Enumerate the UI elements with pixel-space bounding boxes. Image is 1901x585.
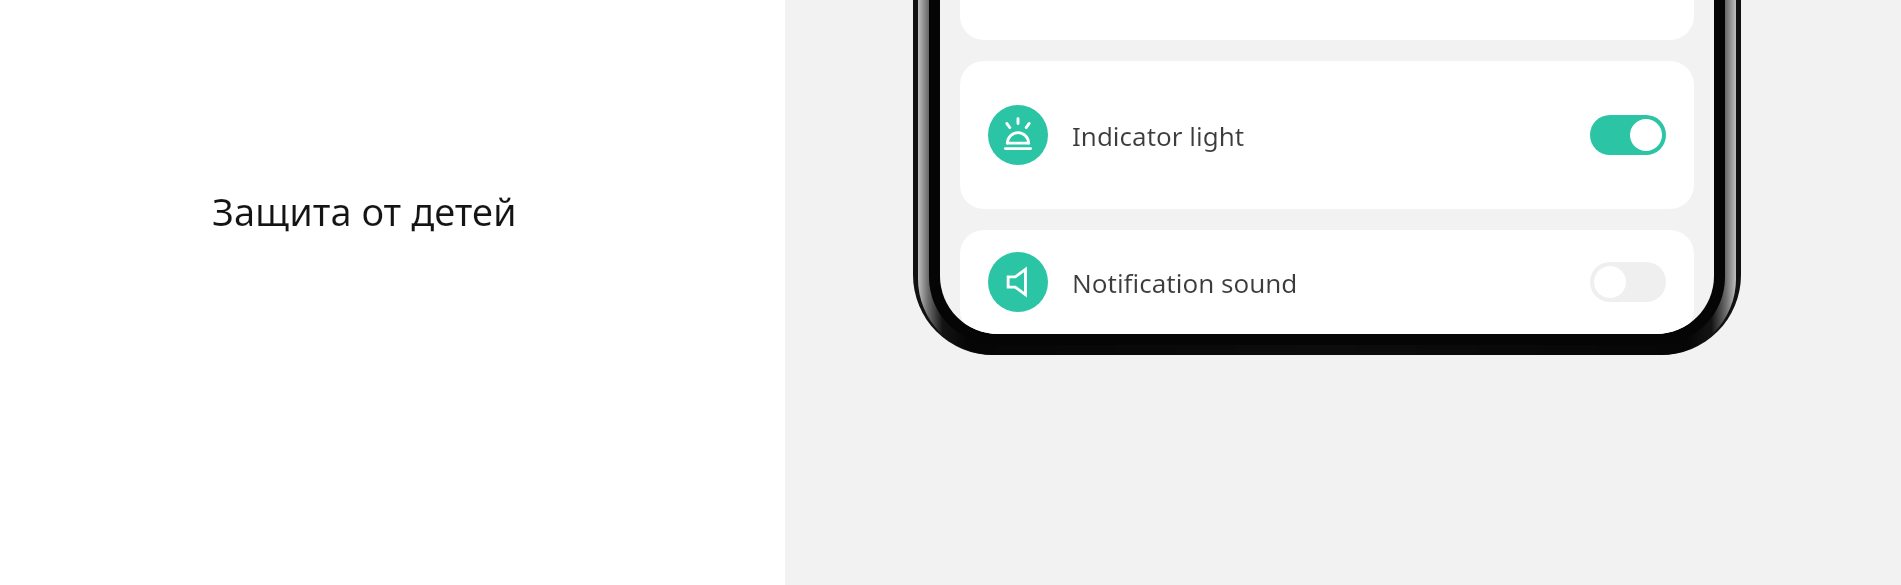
other: Notification sound (988, 252, 1048, 312)
button[interactable]: Indicator light (960, 61, 1694, 209)
staticText: Защита от детей (212, 185, 517, 237)
other: Indicator light (988, 105, 1048, 165)
button[interactable]: On (1590, 115, 1666, 155)
staticText: Indicator light (1072, 118, 1245, 153)
staticText: Notification sound (1072, 265, 1298, 300)
button[interactable]: Notification sound (960, 230, 1694, 334)
button[interactable]: Off (1590, 262, 1666, 302)
